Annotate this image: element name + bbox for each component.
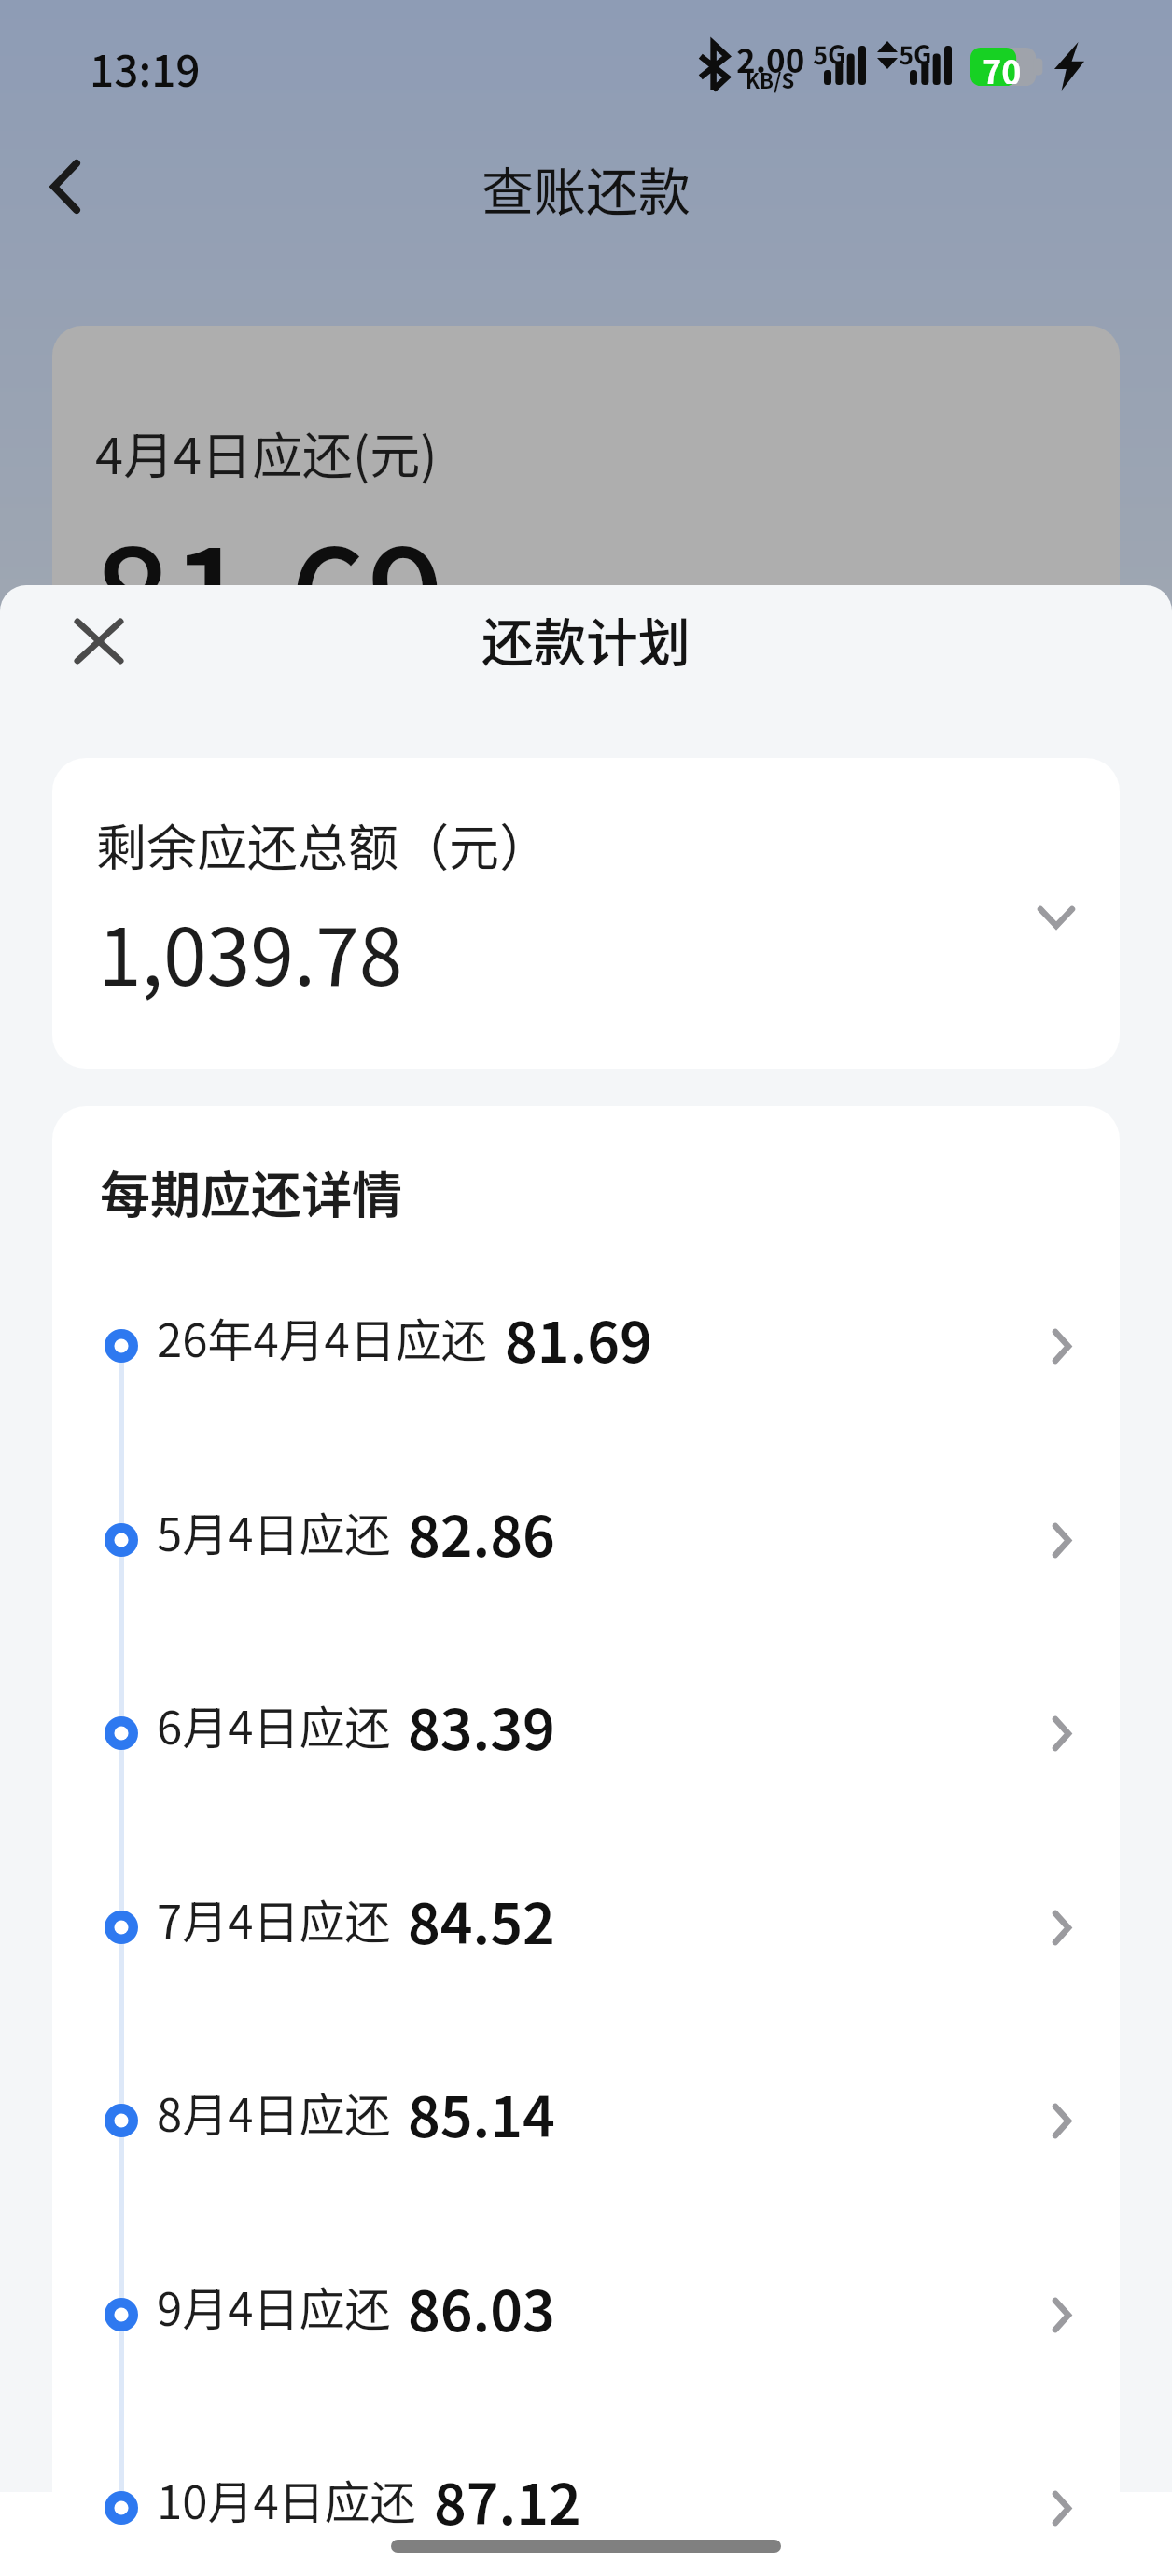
button[interactable]: Close [54,596,144,686]
staticText: 82.86 [408,1491,555,1573]
staticText: 1,039.78 [98,895,403,1009]
button[interactable]: 5月4日应还 [52,1443,1120,1637]
staticText: 4月4日应还(元) [95,415,438,488]
staticText: 26年4月4日应还 [157,1304,487,1370]
staticText: 6月4日应还 [157,1691,391,1757]
button[interactable]: 6月4日应还 [52,1636,1120,1830]
staticText: 5月4日应还 [157,1498,391,1564]
staticText: 87.12 [434,2459,581,2541]
staticText: 2.00 [736,35,805,82]
button[interactable]: 9月4日应还 [52,2218,1120,2412]
staticText: 86.03 [408,2266,555,2347]
staticText: 查账还款 [481,150,691,226]
staticText: 每期应还详情 [100,1155,402,1227]
staticText: 5G [813,35,846,72]
staticText: 10月4日应还 [157,2466,416,2532]
staticText: 9月4日应还 [157,2273,391,2339]
staticText: 81.69 [93,490,445,687]
staticText: 85.14 [408,2072,555,2153]
button[interactable]: 26年4月4日应还 [52,1249,1120,1443]
staticText: 5G [899,35,932,72]
staticText: 7月4日应还 [157,1885,391,1952]
staticText: KB/S [746,64,795,94]
staticText: 8月4日应还 [157,2079,391,2145]
button[interactable]: Back [21,142,110,231]
staticText: 81.69 [505,1297,652,1379]
staticText: 剩余应还总额（元） [96,807,550,880]
staticText: 70 [982,46,1022,84]
staticText: 13:19 [90,37,201,100]
staticText: 83.39 [408,1685,555,1766]
button[interactable]: 8月4日应还 [52,2023,1120,2218]
other: Expand [1038,906,1075,929]
button[interactable]: 10月4日应还 [52,2411,1120,2576]
button[interactable]: 7月4日应还 [52,1830,1120,2024]
staticText: 84.52 [408,1879,555,1960]
staticText: 还款计划 [481,601,691,677]
button[interactable]: 剩余应还总额（元） [52,758,1120,1069]
